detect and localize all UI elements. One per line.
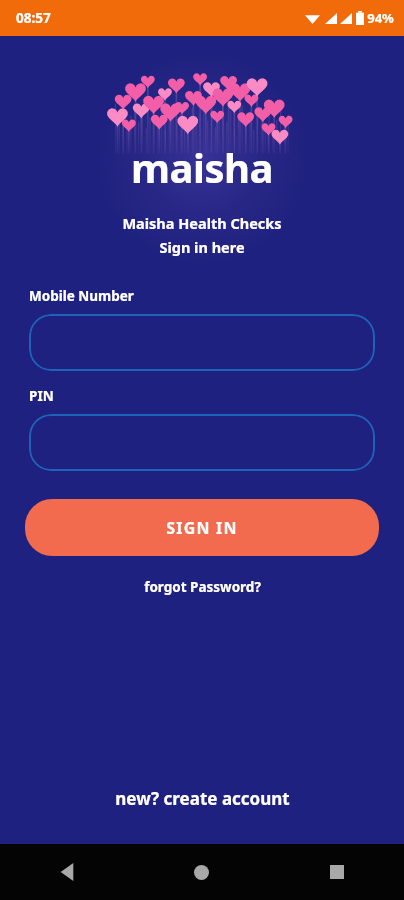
staticText: forgot Password? [144,578,261,596]
staticText: SIGN IN [166,517,238,539]
button[interactable]: Back [0,844,134,900]
staticText: PIN [29,387,54,405]
staticText: Mobile Number [29,287,134,305]
button[interactable]: Home [134,844,269,900]
staticText: maisha [131,140,273,191]
staticText: new? create account [115,787,290,810]
button[interactable] [29,314,375,371]
button[interactable]: forgot Password? [134,574,271,600]
staticText: Maisha Health Checks [122,213,282,233]
button[interactable]: SIGN IN [25,499,379,556]
staticText: 94% [367,9,394,27]
button[interactable] [29,414,375,471]
staticText: Sign in here [159,237,245,257]
button[interactable]: Recent apps [269,844,404,900]
staticText: 08:57 [16,9,51,27]
button[interactable]: new? create account [101,781,304,816]
